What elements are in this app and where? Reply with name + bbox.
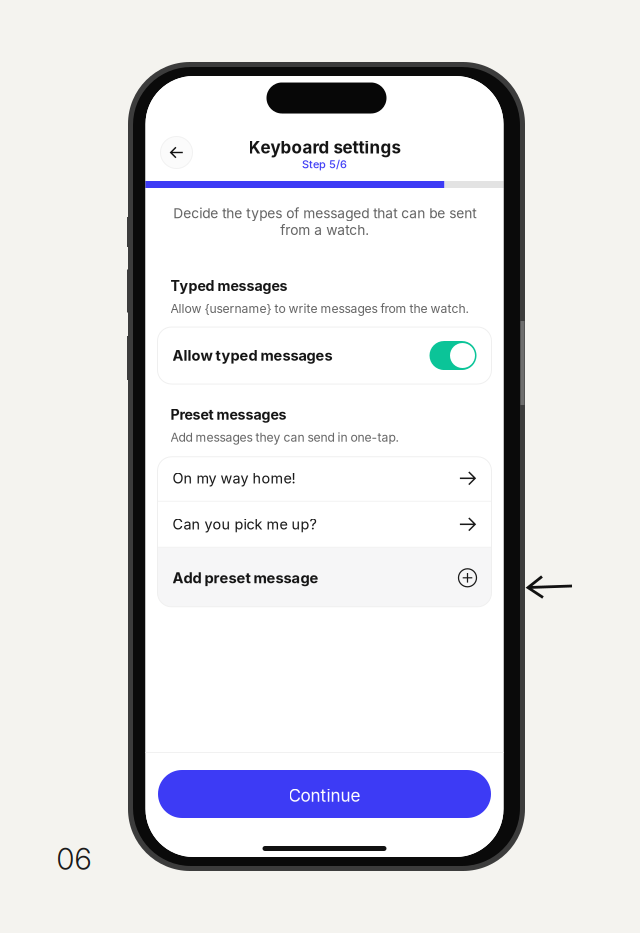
staticText: 06 [56, 841, 91, 877]
staticText: Decide the types of messaged that can be… [173, 205, 476, 238]
button[interactable]: On my way home! [157, 456, 491, 501]
staticText: Add messages they can send in one-tap. [170, 430, 398, 445]
staticText: Allow {username} to write messages from … [170, 301, 468, 316]
button[interactable]: Continue [158, 770, 491, 818]
staticText: Continue [288, 785, 360, 806]
button[interactable]: Add preset message [157, 548, 491, 608]
staticText: Preset messages [170, 406, 286, 423]
button[interactable]: Can you pick me up? [157, 502, 491, 547]
staticText: Step 5/6 [302, 158, 347, 171]
staticText: Typed messages [170, 277, 287, 294]
staticText: On my way home! [172, 470, 295, 487]
staticText: Allow typed messages [172, 347, 332, 364]
staticText: Add preset message [172, 569, 318, 587]
staticText: Can you pick me up? [172, 516, 316, 533]
button[interactable]: Allow typed messages [157, 327, 491, 384]
staticText: Keyboard settings [248, 137, 400, 158]
button[interactable]: Back [160, 136, 192, 168]
